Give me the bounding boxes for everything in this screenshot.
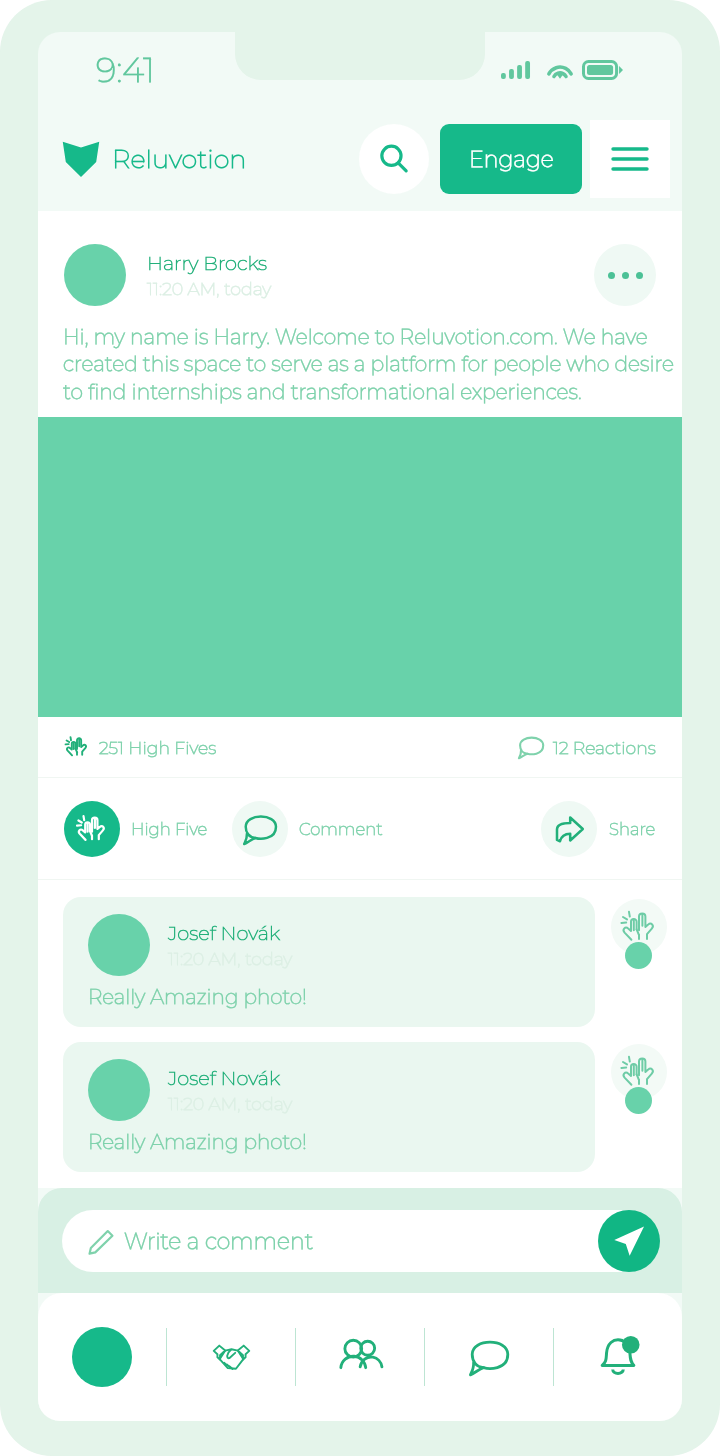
button[interactable]: Josef Novák [63,897,595,1027]
staticText: Share [609,819,656,839]
staticText: 11:20 AM, today [147,278,272,299]
staticText: Comment [299,819,383,839]
button[interactable]: Write a comment [62,1210,658,1272]
staticText: Josef Novák [168,921,280,945]
button[interactable]: Profile [38,1293,166,1421]
staticText: 11:20 AM, today [168,1093,293,1114]
staticText: 11:20 AM, today [168,948,293,969]
button[interactable]: Engage [440,124,582,194]
button[interactable]: Share [541,801,656,857]
staticText: 251 High Fives [99,737,217,758]
button[interactable]: Send [598,1210,660,1272]
staticText: Really Amazing photo! [88,1130,307,1154]
staticText: Harry Brocks [147,251,268,275]
staticText: Really Amazing photo! [88,985,307,1009]
button[interactable]: Messages [425,1293,553,1421]
staticText: Reluvotion [112,143,247,174]
button[interactable]: Menu [590,120,670,198]
button[interactable]: Notifications [554,1293,682,1421]
staticText: Write a comment [124,1228,314,1255]
staticText: Engage [469,146,554,173]
staticText: Josef Novák [168,1066,280,1090]
button[interactable]: High Five [64,801,208,857]
button[interactable]: Groups [296,1293,424,1421]
button[interactable]: Comment [232,801,383,857]
button[interactable]: Connections [167,1293,295,1421]
button[interactable]: Josef Novák [63,1042,595,1172]
staticText: 12 Reactions [553,737,656,758]
staticText: 9:41 [96,49,155,90]
button[interactable]: More options [594,244,656,306]
staticText: Hi, my name is Harry. Welcome to Reluvot… [63,324,675,404]
button[interactable]: High five [595,897,682,1017]
button[interactable]: High five [595,1042,682,1162]
button[interactable]: Search [359,124,429,194]
staticText: High Five [131,819,208,839]
